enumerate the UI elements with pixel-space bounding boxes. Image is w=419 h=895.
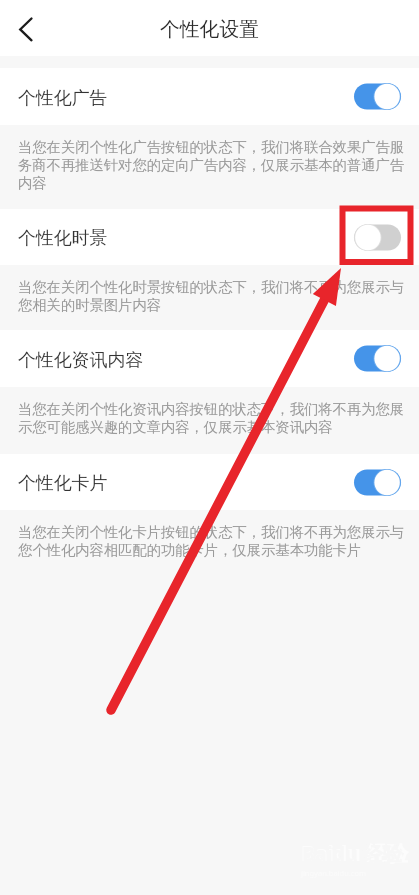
- button[interactable]: On: [354, 345, 401, 372]
- button[interactable]: Back: [0, 0, 52, 56]
- staticText: 个性化时景: [18, 227, 108, 250]
- staticText: 个性化资讯内容: [18, 349, 144, 372]
- staticText: 当您在关闭个性化资讯内容按钮的状态下，我们将不再为您展示您可能感兴趣的文章内容，…: [18, 400, 405, 436]
- button[interactable]: 个性化时景: [0, 209, 419, 265]
- button[interactable]: Off: [354, 224, 401, 251]
- button[interactable]: 个性化卡片: [0, 454, 419, 510]
- button[interactable]: 个性化广告: [0, 68, 419, 125]
- staticText: 个性化卡片: [18, 472, 108, 495]
- staticText: 个性化广告: [18, 87, 108, 110]
- staticText: 当您在关闭个性化时景按钮的状态下，我们将不再为您展示与您相关的时景图片内容: [18, 278, 405, 314]
- button[interactable]: On: [354, 83, 401, 110]
- button[interactable]: On: [354, 469, 401, 496]
- staticText: 个性化设置: [160, 17, 259, 42]
- staticText: 当您在关闭个性化广告按钮的状态下，我们将联合效果广告服务商不再推送针对您的定向广…: [18, 138, 405, 192]
- staticText: 当您在关闭个性化卡片按钮的状态下，我们将不再为您展示与您个性化内容相匹配的功能卡…: [18, 523, 405, 559]
- button[interactable]: 个性化资讯内容: [0, 330, 419, 387]
